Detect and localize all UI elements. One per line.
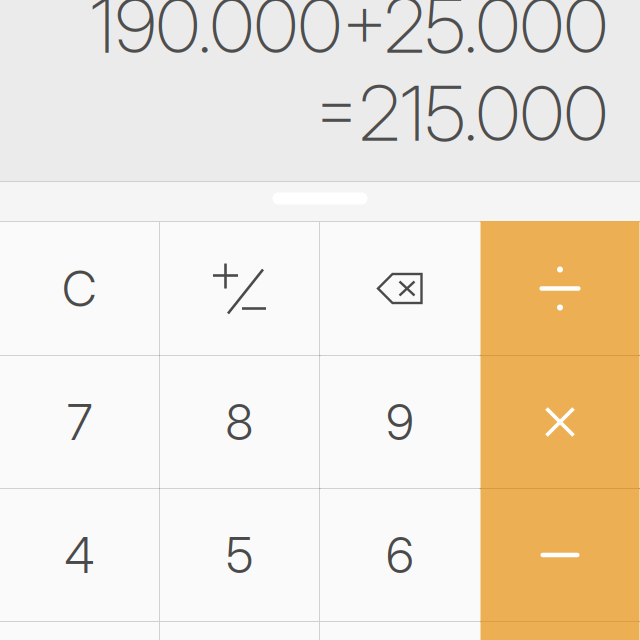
button[interactable]: 6 — [320, 488, 479, 621]
button[interactable]: 8 — [160, 355, 319, 488]
staticText: 6 — [386, 525, 414, 585]
button[interactable]: 4 — [0, 488, 159, 621]
button[interactable]: 7 — [0, 355, 159, 488]
staticText: 8 — [225, 392, 253, 452]
button[interactable]: Delete — [320, 222, 479, 355]
button[interactable]: 9 — [320, 355, 479, 488]
staticText: 9 — [386, 392, 414, 452]
staticText: C — [62, 259, 97, 318]
staticText: 190.000+25.000 — [90, 0, 608, 71]
button[interactable]: C — [0, 222, 159, 355]
button[interactable]: Minus — [480, 488, 639, 621]
button[interactable]: 5 — [160, 488, 319, 621]
staticText: 5 — [226, 525, 253, 585]
button[interactable]: Plus — [480, 622, 639, 640]
staticText: =215.000 — [314, 67, 608, 159]
staticText: 7 — [67, 392, 92, 452]
staticText: 4 — [64, 525, 94, 585]
button[interactable]: Plus minus — [160, 222, 319, 355]
button[interactable]: Multiply — [480, 355, 639, 488]
button[interactable]: Divide — [480, 222, 639, 355]
